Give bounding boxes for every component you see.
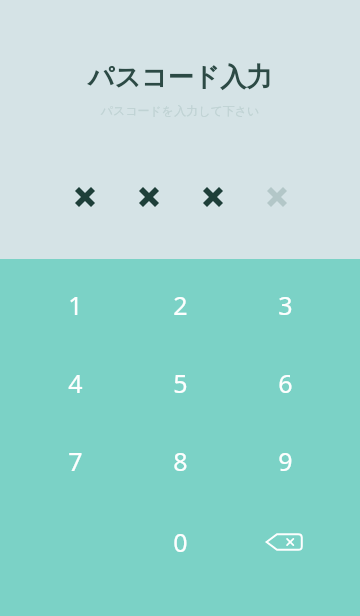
button[interactable]: 4: [40, 353, 110, 413]
button[interactable]: Backspace: [250, 512, 320, 572]
staticText: 2: [173, 288, 188, 322]
button[interactable]: 9: [250, 431, 320, 491]
staticText: 0: [173, 525, 188, 559]
staticText: 1: [68, 288, 83, 322]
staticText: 4: [68, 366, 83, 400]
staticText: パスコード入力: [0, 61, 360, 94]
button[interactable]: 6: [250, 353, 320, 413]
staticText: 6: [278, 366, 293, 400]
staticText: 3: [278, 288, 293, 322]
staticText: 8: [173, 444, 188, 478]
button[interactable]: 5: [145, 353, 215, 413]
staticText: 7: [68, 444, 83, 478]
staticText: 5: [173, 366, 188, 400]
button[interactable]: 0: [145, 512, 215, 572]
button[interactable]: 3: [250, 275, 320, 335]
button[interactable]: 1: [40, 275, 110, 335]
staticText: 9: [278, 444, 293, 478]
staticText: パスコードを入力して下さい: [0, 103, 360, 118]
button[interactable]: 7: [40, 431, 110, 491]
button[interactable]: 8: [145, 431, 215, 491]
button[interactable]: 2: [145, 275, 215, 335]
